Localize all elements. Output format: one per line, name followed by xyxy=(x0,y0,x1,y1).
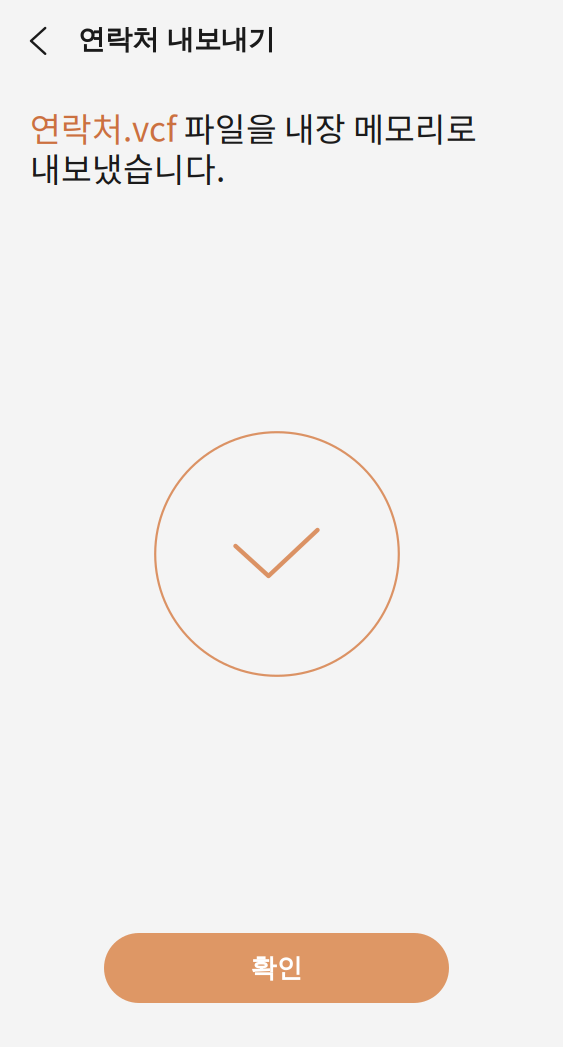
button[interactable]: 확인 xyxy=(104,933,449,1003)
staticText: 연락처 내보내기 xyxy=(78,22,275,57)
staticText: 연락처.vcf 파일을 내장 메모리로 내보냈습니다. xyxy=(30,103,477,191)
staticText: 확인 xyxy=(250,952,302,984)
button[interactable]: Back xyxy=(13,14,63,68)
